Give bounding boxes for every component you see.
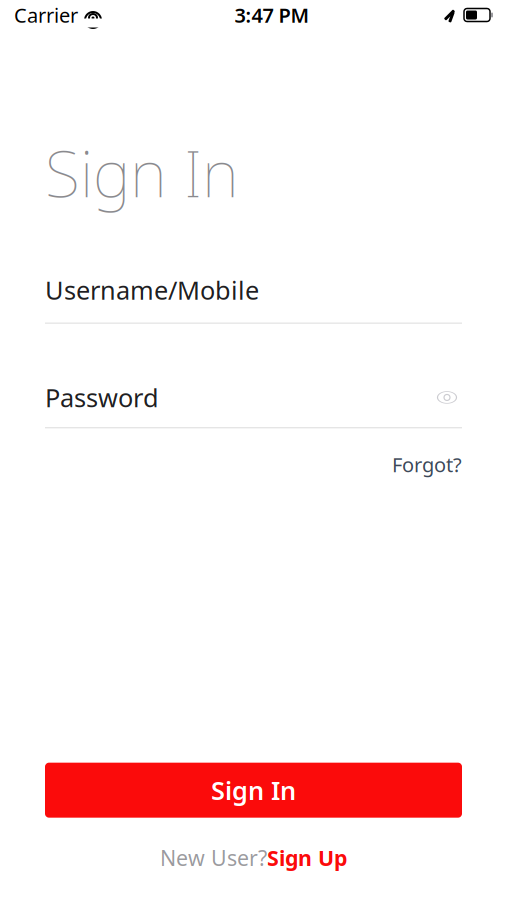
button[interactable]: Forgot? <box>392 447 462 482</box>
button[interactable]: New User? <box>0 838 507 878</box>
button[interactable]: Show password <box>432 385 462 409</box>
staticText: Username/Mobile <box>45 273 259 307</box>
staticText: Sign Up <box>267 844 347 872</box>
staticText: New User? <box>160 844 267 872</box>
staticText: Carrier <box>14 2 78 28</box>
staticText: Sign In <box>45 130 239 215</box>
staticText: Password <box>45 381 159 414</box>
staticText: Sign In <box>211 773 296 807</box>
staticText: 3:47 PM <box>234 2 309 28</box>
staticText: Forgot? <box>392 451 462 478</box>
button[interactable]: Sign In <box>45 763 462 818</box>
